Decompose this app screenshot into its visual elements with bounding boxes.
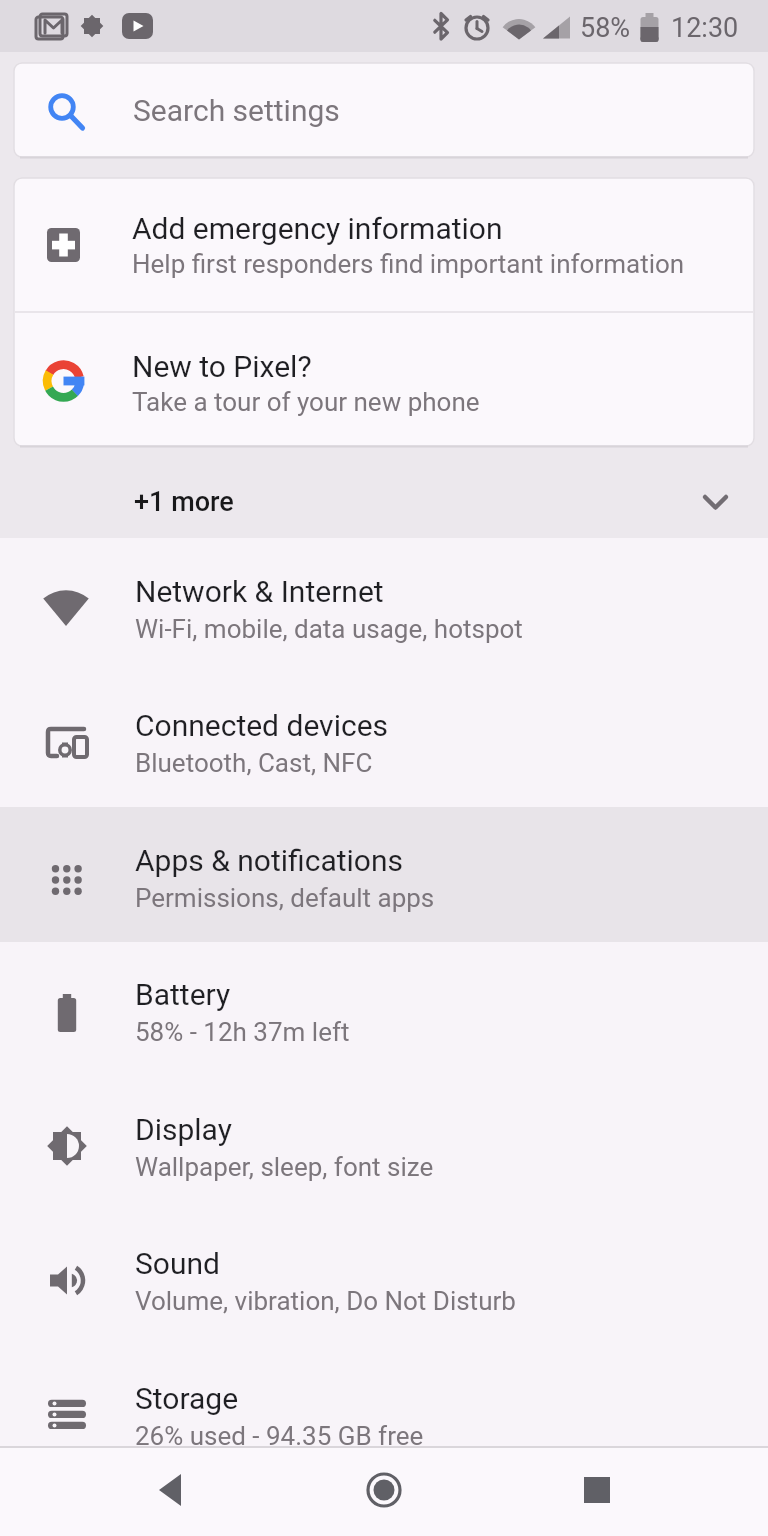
- staticText: Volume, vibration, Do Not Disturb: [135, 1286, 516, 1316]
- staticText: 26% used - 94.35 GB free: [135, 1421, 424, 1451]
- staticText: Sound: [135, 1246, 220, 1281]
- staticText: Help first responders find important inf…: [132, 249, 685, 279]
- staticText: Take a tour of your new phone: [132, 387, 480, 417]
- staticText: Apps & notifications: [135, 843, 403, 878]
- staticText: Display: [135, 1112, 232, 1147]
- staticText: Storage: [135, 1381, 239, 1416]
- staticText: Add emergency information: [132, 211, 503, 246]
- staticText: Search settings: [133, 93, 340, 128]
- staticText: 12:30: [671, 12, 739, 44]
- staticText: Bluetooth, Cast, NFC: [135, 748, 373, 778]
- staticText: Connected devices: [135, 708, 389, 743]
- staticText: 58%: [580, 12, 631, 44]
- staticText: New to Pixel?: [132, 349, 312, 384]
- staticText: Wallpaper, sleep, font size: [135, 1152, 434, 1182]
- staticText: +1 more: [134, 486, 234, 518]
- staticText: Network & Internet: [135, 574, 384, 609]
- staticText: Permissions, default apps: [135, 883, 435, 913]
- staticText: 58% - 12h 37m left: [135, 1017, 350, 1047]
- staticText: Wi-Fi, mobile, data usage, hotspot: [135, 614, 523, 644]
- staticText: Battery: [135, 977, 231, 1012]
